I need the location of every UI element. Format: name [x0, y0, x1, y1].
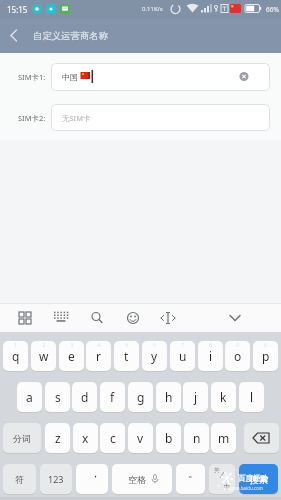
button[interactable]: 分词: [3, 423, 41, 453]
button[interactable]: [121, 305, 145, 331]
button[interactable]: p: [253, 341, 278, 371]
button[interactable]: t: [114, 341, 139, 371]
staticText: 搜索: [250, 474, 268, 485]
staticText: 无SIM卡: [62, 113, 91, 123]
staticText: 空格: [128, 474, 146, 485]
staticText: 2: [42, 341, 46, 348]
button[interactable]: [85, 305, 109, 331]
button[interactable]: m: [211, 423, 236, 453]
staticText: 5: [125, 341, 129, 348]
button[interactable]: 无SIM卡: [51, 104, 270, 131]
staticText: c: [110, 430, 116, 446]
button[interactable]: 。: [176, 464, 205, 494]
staticText: p: [262, 348, 270, 364]
button[interactable]: 符: [3, 464, 36, 494]
staticText: l: [250, 389, 254, 405]
staticText: v: [137, 430, 144, 446]
staticText: d: [81, 389, 89, 405]
staticText: 中国: [62, 72, 78, 82]
staticText: a: [26, 389, 33, 405]
staticText: 英: [214, 467, 220, 474]
staticText: f: [110, 389, 115, 405]
staticText: 7: [181, 341, 185, 348]
staticText: ，: [90, 466, 101, 480]
staticText: 9: [236, 341, 240, 348]
staticText: r: [96, 348, 101, 364]
staticText: 符: [15, 474, 24, 485]
staticText: q: [12, 348, 20, 364]
button[interactable]: e: [59, 341, 84, 371]
button[interactable]: u: [170, 341, 195, 371]
staticText: t: [124, 348, 129, 364]
button[interactable]: w: [31, 341, 56, 371]
button[interactable]: f: [100, 382, 125, 412]
staticText: y: [151, 348, 158, 364]
button[interactable]: s: [45, 382, 70, 412]
staticText: 3: [70, 341, 74, 348]
staticText: 分词: [13, 433, 31, 444]
staticText: b: [165, 430, 173, 446]
button[interactable]: g: [128, 382, 153, 412]
staticText: x: [82, 430, 89, 446]
staticText: o: [234, 348, 242, 364]
staticText: SIM卡2:: [18, 113, 46, 123]
staticText: e: [68, 348, 75, 364]
staticText: jingyan.baidu.com: [224, 485, 263, 491]
button[interactable]: 搜索: [239, 464, 278, 494]
button[interactable]: z: [45, 423, 70, 453]
button[interactable]: [13, 305, 37, 331]
button[interactable]: ，: [76, 464, 108, 494]
button[interactable]: i: [198, 341, 223, 371]
button[interactable]: h: [156, 382, 181, 412]
button[interactable]: l: [239, 382, 264, 412]
button[interactable]: 空格: [112, 464, 172, 494]
button[interactable]: r: [86, 341, 111, 371]
button[interactable]: c: [100, 423, 125, 453]
button[interactable]: y: [142, 341, 167, 371]
button[interactable]: v: [128, 423, 153, 453]
button[interactable]: j: [183, 382, 208, 412]
staticText: 百度经验: [238, 474, 268, 483]
button[interactable]: 15:15: [0, 0, 281, 18]
button[interactable]: q: [3, 341, 28, 371]
staticText: h: [165, 389, 173, 405]
staticText: s: [55, 389, 61, 405]
button[interactable]: n: [184, 423, 209, 453]
staticText: 0.11K/s: [142, 5, 163, 13]
button[interactable]: o: [225, 341, 250, 371]
button[interactable]: x: [73, 423, 98, 453]
button[interactable]: [12, 18, 132, 53]
button[interactable]: b: [156, 423, 181, 453]
staticText: 15:15: [7, 4, 28, 15]
staticText: SIM卡1:: [18, 72, 46, 82]
staticText: 0: [264, 341, 268, 348]
staticText: z: [55, 430, 61, 446]
staticText: 。: [188, 466, 199, 480]
button[interactable]: 英: [209, 464, 235, 494]
staticText: m: [218, 430, 230, 446]
button[interactable]: 123: [40, 464, 72, 494]
button[interactable]: d: [72, 382, 97, 412]
button[interactable]: [156, 305, 180, 331]
staticText: 中: [224, 483, 231, 491]
button[interactable]: [223, 305, 247, 331]
staticText: u: [179, 348, 187, 364]
button[interactable]: [244, 423, 279, 453]
button[interactable]: k: [211, 382, 236, 412]
staticText: 1: [14, 341, 18, 348]
staticText: i: [209, 348, 213, 364]
staticText: j: [194, 389, 198, 405]
button[interactable]: 中国: [51, 63, 270, 91]
staticText: 8: [209, 341, 213, 348]
staticText: 6: [153, 341, 157, 348]
staticText: 4: [97, 341, 101, 348]
staticText: 自定义运营商名称: [33, 30, 109, 42]
staticText: n: [193, 430, 201, 446]
staticText: k: [220, 389, 227, 405]
button[interactable]: [49, 305, 73, 331]
button[interactable]: a: [17, 382, 42, 412]
staticText: 123: [48, 473, 64, 485]
staticText: g: [137, 389, 145, 405]
staticText: 66%: [266, 5, 279, 14]
staticText: w: [39, 348, 49, 364]
